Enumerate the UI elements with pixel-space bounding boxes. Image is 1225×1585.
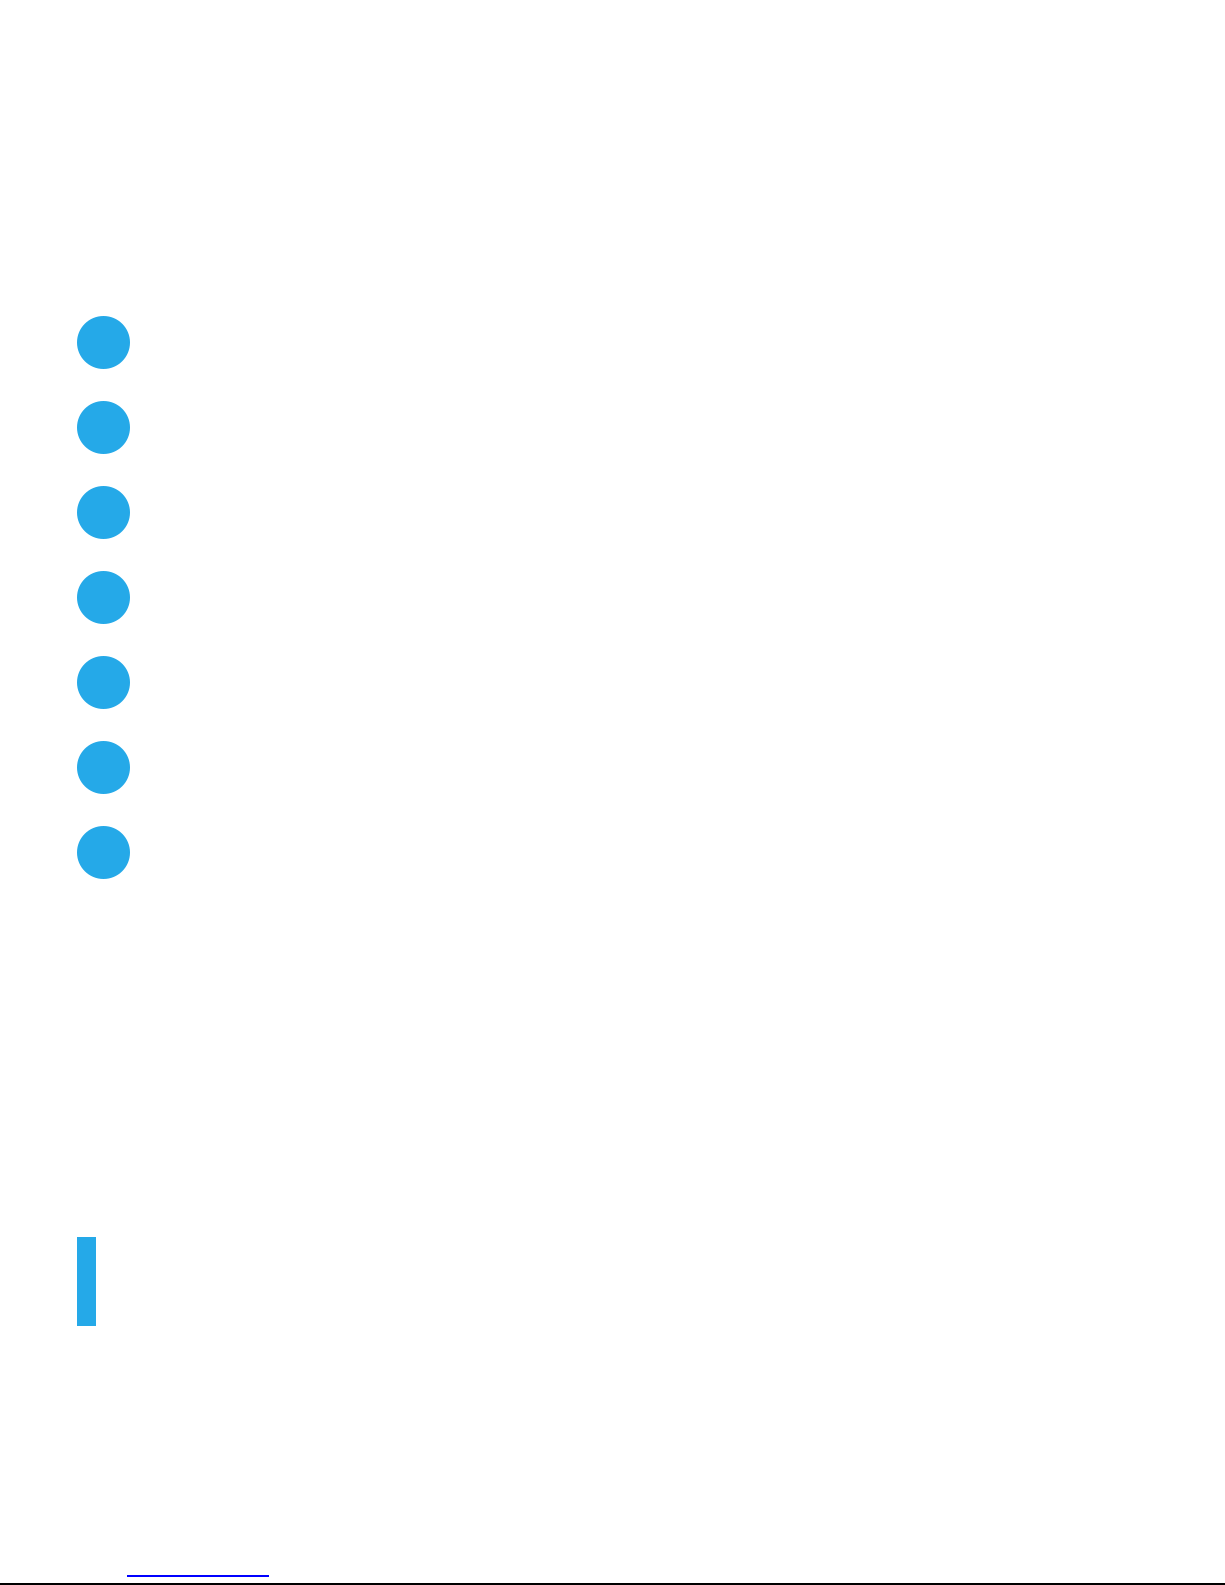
button[interactable]: Footer link <box>127 1532 269 1577</box>
button[interactable]: Item three <box>77 486 1225 571</box>
button[interactable]: Item six <box>77 741 1225 826</box>
button[interactable]: Item four <box>77 571 1225 656</box>
button[interactable]: Item seven <box>77 826 1225 911</box>
button[interactable]: Item five <box>77 656 1225 741</box>
button[interactable]: Item two <box>77 401 1225 486</box>
button[interactable]: Item one <box>77 316 1225 401</box>
